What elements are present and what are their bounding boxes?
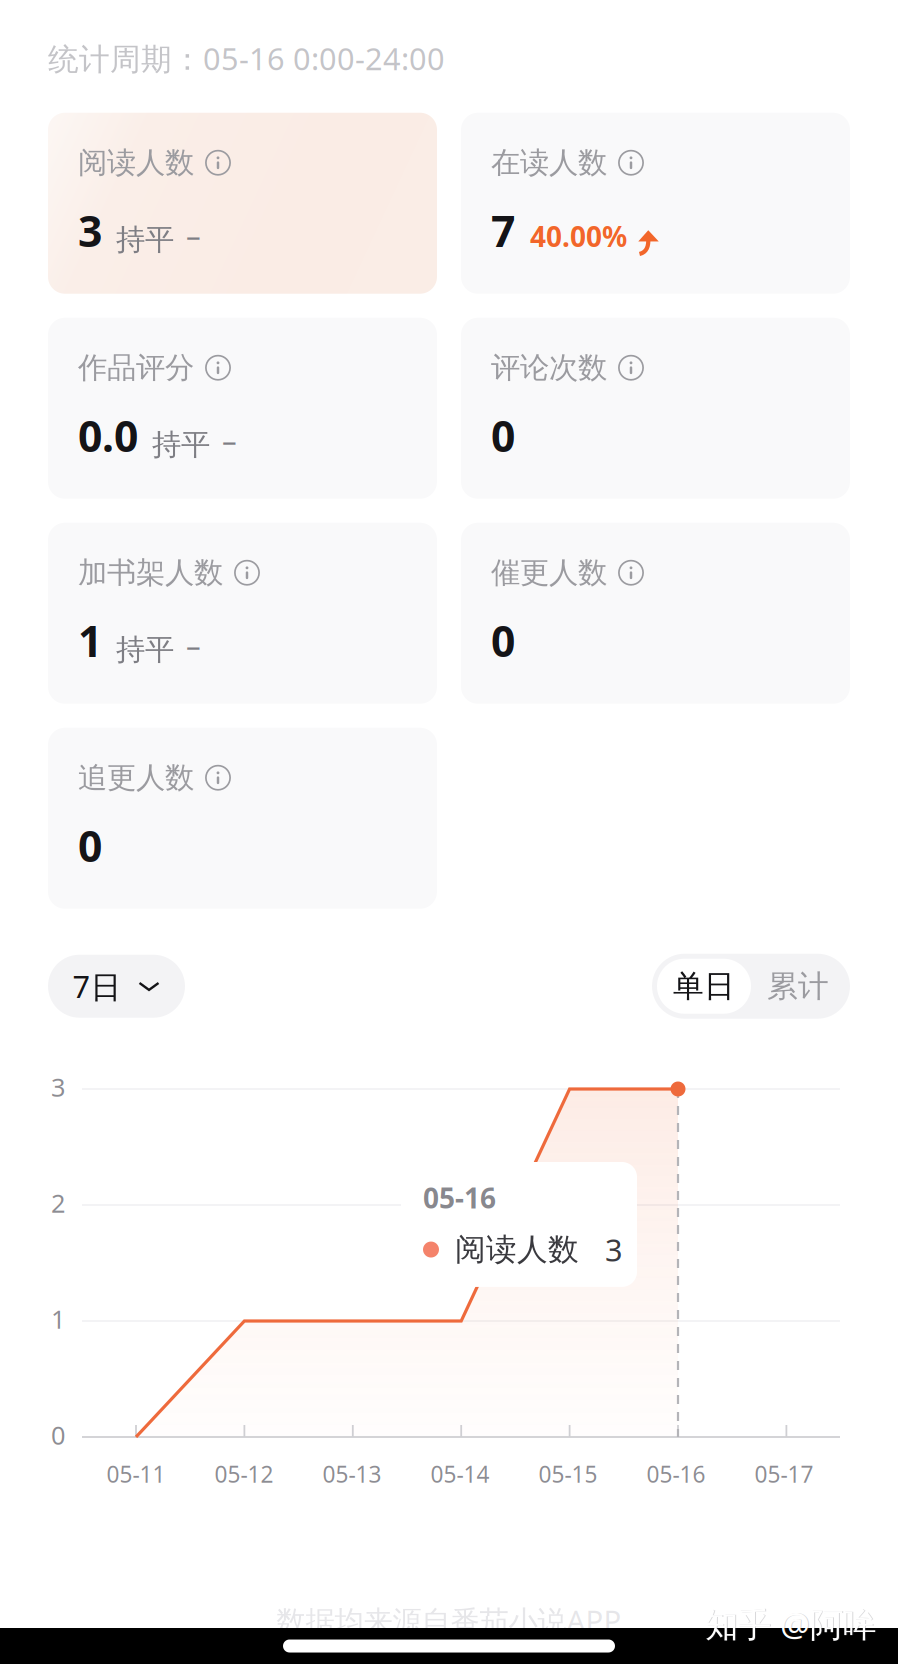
staticText: 统计周期：05-16 0:00-24:00 [48, 38, 445, 79]
staticText: 1 [51, 1302, 65, 1336]
staticText: 3 [51, 1070, 65, 1104]
staticText: 0 [51, 1418, 65, 1452]
button[interactable]: 评论次数 [461, 318, 850, 499]
button[interactable]: 加书架人数 [48, 523, 437, 704]
staticText: 7日 [72, 966, 121, 1007]
staticText: – [222, 421, 237, 460]
staticText: 05-11 [106, 1459, 165, 1489]
button[interactable]: 单日 [657, 959, 751, 1014]
button[interactable]: 催更人数 [461, 523, 850, 704]
staticText: 05-17 [754, 1459, 813, 1489]
staticText: 追更人数 [78, 760, 194, 796]
staticText: 催更人数 [491, 555, 607, 591]
staticText: 持平 [152, 427, 210, 463]
button[interactable]: 阅读人数 [48, 113, 437, 294]
staticText: 05-12 [214, 1459, 273, 1489]
staticText: 作品评分 [78, 350, 194, 386]
staticText: 知乎 @阿哞 [705, 1602, 876, 1646]
staticText: 0 [491, 612, 515, 669]
staticText: – [186, 626, 201, 665]
staticText: 0 [491, 407, 515, 464]
button[interactable]: 在读人数 [461, 113, 850, 294]
staticText: 阅读人数 [455, 1231, 579, 1268]
staticText: 数据均来源自番茄小说APP [276, 1601, 621, 1640]
button[interactable]: 7日 [48, 955, 185, 1018]
staticText: 单日 [673, 967, 735, 1005]
staticText: 阅读人数 [78, 145, 194, 181]
staticText: 3 [605, 1229, 623, 1270]
staticText: 7 [491, 202, 515, 259]
staticText: 0 [78, 817, 102, 874]
staticText: 05-14 [430, 1459, 489, 1489]
staticText: 2 [51, 1186, 65, 1220]
staticText: 知乎 @阿哞 [706, 1602, 877, 1646]
staticText: – [186, 216, 201, 255]
staticText: 累计 [767, 967, 829, 1005]
staticText: 在读人数 [491, 145, 607, 181]
staticText: 0.0 [78, 407, 138, 464]
staticText: 05-15 [538, 1459, 597, 1489]
staticText: 1 [78, 612, 102, 669]
staticText: 40.00% [530, 217, 627, 255]
staticText: 3 [78, 202, 102, 259]
staticText: 加书架人数 [78, 555, 223, 591]
button[interactable]: 累计 [751, 959, 845, 1014]
staticText: 持平 [116, 632, 174, 668]
staticText: 05-16 [423, 1179, 496, 1216]
staticText: 05-16 [646, 1459, 705, 1489]
button[interactable]: 作品评分 [48, 318, 437, 499]
staticText: 持平 [116, 222, 174, 258]
staticText: 05-13 [322, 1459, 381, 1489]
staticText: 评论次数 [491, 350, 607, 386]
button[interactable]: 追更人数 [48, 728, 437, 909]
